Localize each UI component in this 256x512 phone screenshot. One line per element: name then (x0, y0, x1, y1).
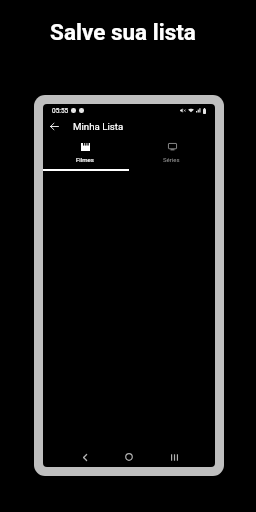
staticText: Filmes (76, 156, 94, 163)
button[interactable]: Filmes (43, 138, 129, 171)
button[interactable]: Recentes (164, 447, 184, 467)
button[interactable]: Início (119, 447, 139, 467)
staticText: Minha Lista (73, 121, 124, 132)
button[interactable]: Voltar (75, 447, 95, 467)
staticText: Séries (163, 156, 180, 163)
staticText: 05:55 (52, 107, 69, 115)
button[interactable]: Voltar (43, 115, 65, 137)
staticText: Salve sua lista (0, 19, 251, 45)
button[interactable]: Séries (129, 138, 215, 171)
